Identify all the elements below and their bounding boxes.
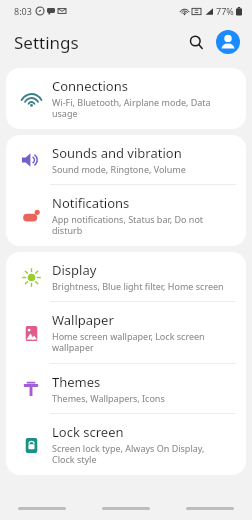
staticText: Themes, Wallpapers, Icons: [52, 392, 165, 404]
button[interactable]: Sounds and vibration: [6, 135, 246, 184]
staticText: Settings: [14, 31, 79, 54]
button[interactable]: Display: [6, 252, 246, 301]
staticText: App notifications, Status bar, Do not di…: [52, 213, 204, 237]
staticText: 77%: [216, 5, 234, 17]
staticText: Sound mode, Ringtone, Volume: [52, 163, 186, 175]
button[interactable]: Connections: [6, 68, 246, 129]
button[interactable]: Lock screen: [6, 414, 246, 475]
staticText: Sounds and vibration: [52, 144, 182, 162]
button[interactable]: Search: [182, 28, 210, 56]
staticText: Connections: [52, 77, 128, 95]
staticText: Wallpaper: [52, 311, 114, 329]
staticText: Themes: [52, 373, 101, 391]
button[interactable]: Wallpaper: [6, 302, 246, 363]
staticText: Home screen wallpaper, Lock screen wallp…: [52, 330, 205, 354]
button[interactable]: Notifications: [6, 185, 246, 246]
button[interactable]: Account: [216, 30, 240, 54]
staticText: 8:03: [14, 5, 32, 17]
staticText: Wi-Fi, Bluetooth, Airplane mode, Data us…: [52, 96, 211, 120]
button[interactable]: Home: [84, 496, 168, 520]
button[interactable]: Back: [168, 496, 252, 520]
staticText: Display: [52, 261, 97, 279]
button[interactable]: Recents: [0, 496, 84, 520]
button[interactable]: Themes: [6, 364, 246, 413]
staticText: Screen lock type, Always On Display, Clo…: [52, 442, 205, 466]
staticText: Lock screen: [52, 423, 124, 441]
staticText: Notifications: [52, 194, 130, 212]
staticText: Brightness, Blue light filter, Home scre…: [52, 280, 224, 292]
